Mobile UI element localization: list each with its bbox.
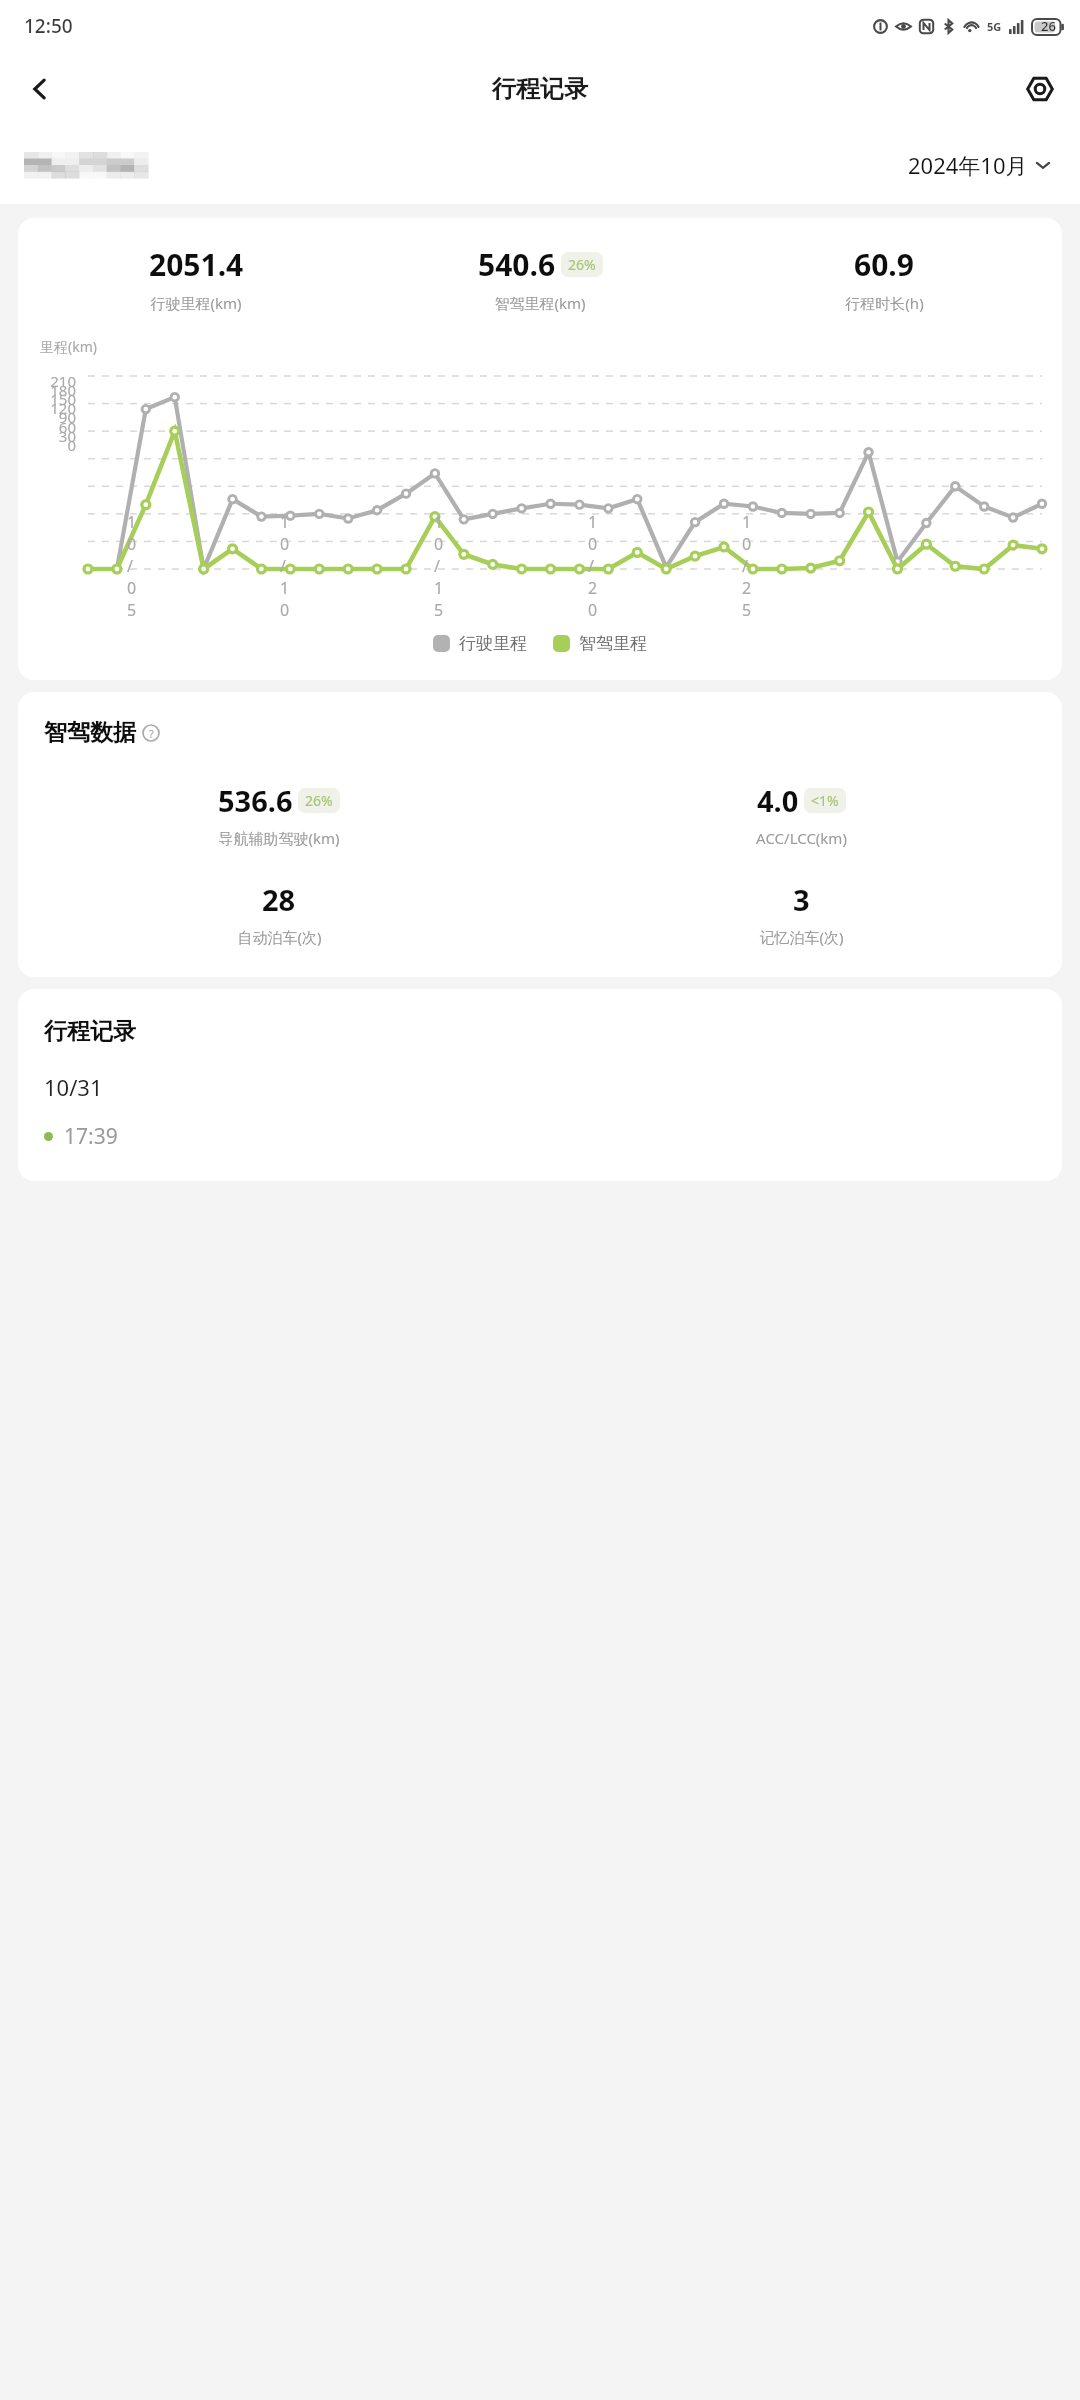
staticText: 智驾数据 bbox=[44, 718, 136, 747]
button[interactable]: Settings bbox=[1012, 61, 1068, 117]
staticText: 智驾里程 bbox=[579, 633, 647, 654]
staticText: 行程记录 bbox=[492, 74, 588, 104]
staticText: 2051.4 bbox=[149, 244, 244, 285]
staticText: 28 bbox=[262, 880, 296, 919]
staticText: <1% bbox=[811, 791, 839, 810]
button[interactable]: 智驾里程 bbox=[553, 633, 647, 654]
staticText: 行程记录 bbox=[44, 1017, 136, 1046]
button[interactable]: Back bbox=[12, 61, 68, 117]
staticText: 行程时长(h) bbox=[845, 293, 924, 313]
staticText: ? bbox=[149, 726, 154, 741]
staticText: 60.9 bbox=[854, 244, 914, 285]
staticText: 行驶里程 bbox=[459, 633, 527, 654]
button[interactable]: Info bbox=[140, 722, 162, 744]
staticText: 536.6 bbox=[218, 781, 293, 820]
staticText: 26 bbox=[1041, 17, 1056, 35]
staticText: 90 bbox=[18, 407, 76, 427]
staticText: 12:50 bbox=[24, 13, 73, 39]
staticText: 540.6 bbox=[478, 244, 556, 285]
staticText: 210 bbox=[18, 371, 76, 391]
button[interactable]: 17:39 bbox=[18, 1122, 1062, 1151]
staticText: 里程(km) bbox=[40, 337, 97, 356]
staticText: 180 bbox=[18, 380, 76, 400]
staticText: 60 bbox=[18, 417, 76, 437]
staticText: 120 bbox=[18, 398, 76, 418]
staticText: 2024年10月 bbox=[908, 150, 1028, 180]
staticText: 4.0 bbox=[757, 781, 799, 820]
staticText: 26% bbox=[568, 255, 596, 274]
staticText: 5G bbox=[987, 19, 1002, 34]
staticText: 智驾里程(km) bbox=[494, 293, 586, 313]
button[interactable]: 行驶里程 bbox=[433, 633, 527, 654]
button[interactable]: 2024年10月 bbox=[904, 144, 1056, 186]
staticText: 记忆泊车(次) bbox=[759, 927, 844, 947]
staticText: 行驶里程(km) bbox=[150, 293, 242, 313]
staticText: 0 bbox=[18, 435, 76, 455]
staticText: 17:39 bbox=[64, 1122, 118, 1151]
staticText: 导航辅助驾驶(km) bbox=[218, 828, 340, 848]
staticText: 150 bbox=[18, 389, 76, 409]
staticText: 10/31 bbox=[44, 1072, 103, 1102]
staticText: 自动泊车(次) bbox=[237, 927, 322, 947]
staticText: 26% bbox=[305, 791, 333, 810]
staticText: ACC/LCC(km) bbox=[756, 828, 847, 848]
staticText: 30 bbox=[18, 426, 76, 446]
staticText: 3 bbox=[793, 880, 810, 919]
